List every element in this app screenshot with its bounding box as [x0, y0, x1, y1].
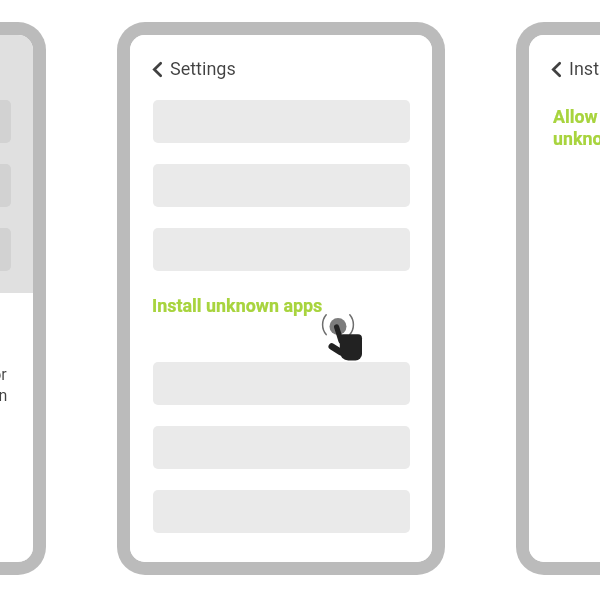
staticText: This source has not been verified or rev… — [0, 365, 8, 468]
button[interactable]: Back — [153, 58, 236, 79]
other: Tap — [320, 312, 368, 364]
staticText: Settings — [170, 58, 236, 79]
staticText: Install unknown apps — [569, 58, 600, 79]
button[interactable]: Install unknown apps — [152, 295, 323, 316]
staticText: Allow from this source — [553, 106, 600, 127]
button[interactable]: Back — [552, 58, 600, 79]
staticText: unknown apps — [553, 128, 600, 149]
